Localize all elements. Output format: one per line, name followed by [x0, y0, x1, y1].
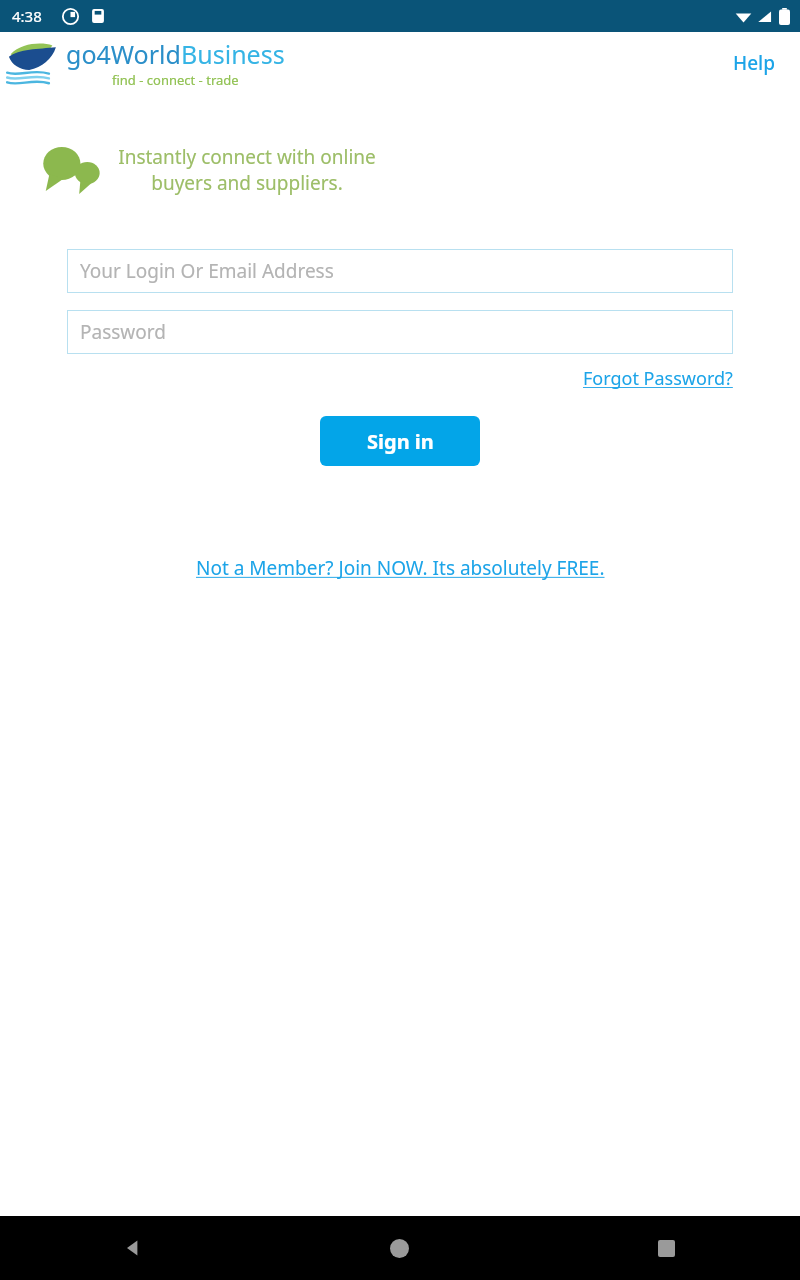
button[interactable]: Back [0, 1216, 266, 1280]
staticText: find - connect - trade [112, 71, 239, 89]
staticText: Not a Member? Join NOW. Its absolutely F… [196, 555, 605, 581]
staticText: Business [181, 37, 285, 71]
staticText: Instantly connect with online buyers and… [118, 144, 376, 195]
button[interactable]: Help [709, 38, 800, 88]
button[interactable]: Your Login Or Email Address [67, 249, 733, 293]
staticText: go4World [66, 37, 181, 71]
staticText: Forgot Password? [583, 366, 733, 391]
button[interactable]: Sign in [320, 416, 480, 466]
staticText: Sign in [367, 428, 434, 455]
staticText: Help [733, 50, 776, 76]
staticText: Password [80, 319, 166, 345]
button[interactable]: Recent apps [533, 1216, 800, 1280]
button[interactable]: Home [266, 1216, 533, 1280]
button[interactable]: Password [67, 310, 733, 354]
staticText: 4:38 [12, 6, 42, 26]
button[interactable]: Not a Member? Join NOW. Its absolutely F… [196, 550, 605, 586]
staticText: Your Login Or Email Address [80, 258, 334, 284]
button[interactable]: Forgot Password? [583, 362, 733, 395]
